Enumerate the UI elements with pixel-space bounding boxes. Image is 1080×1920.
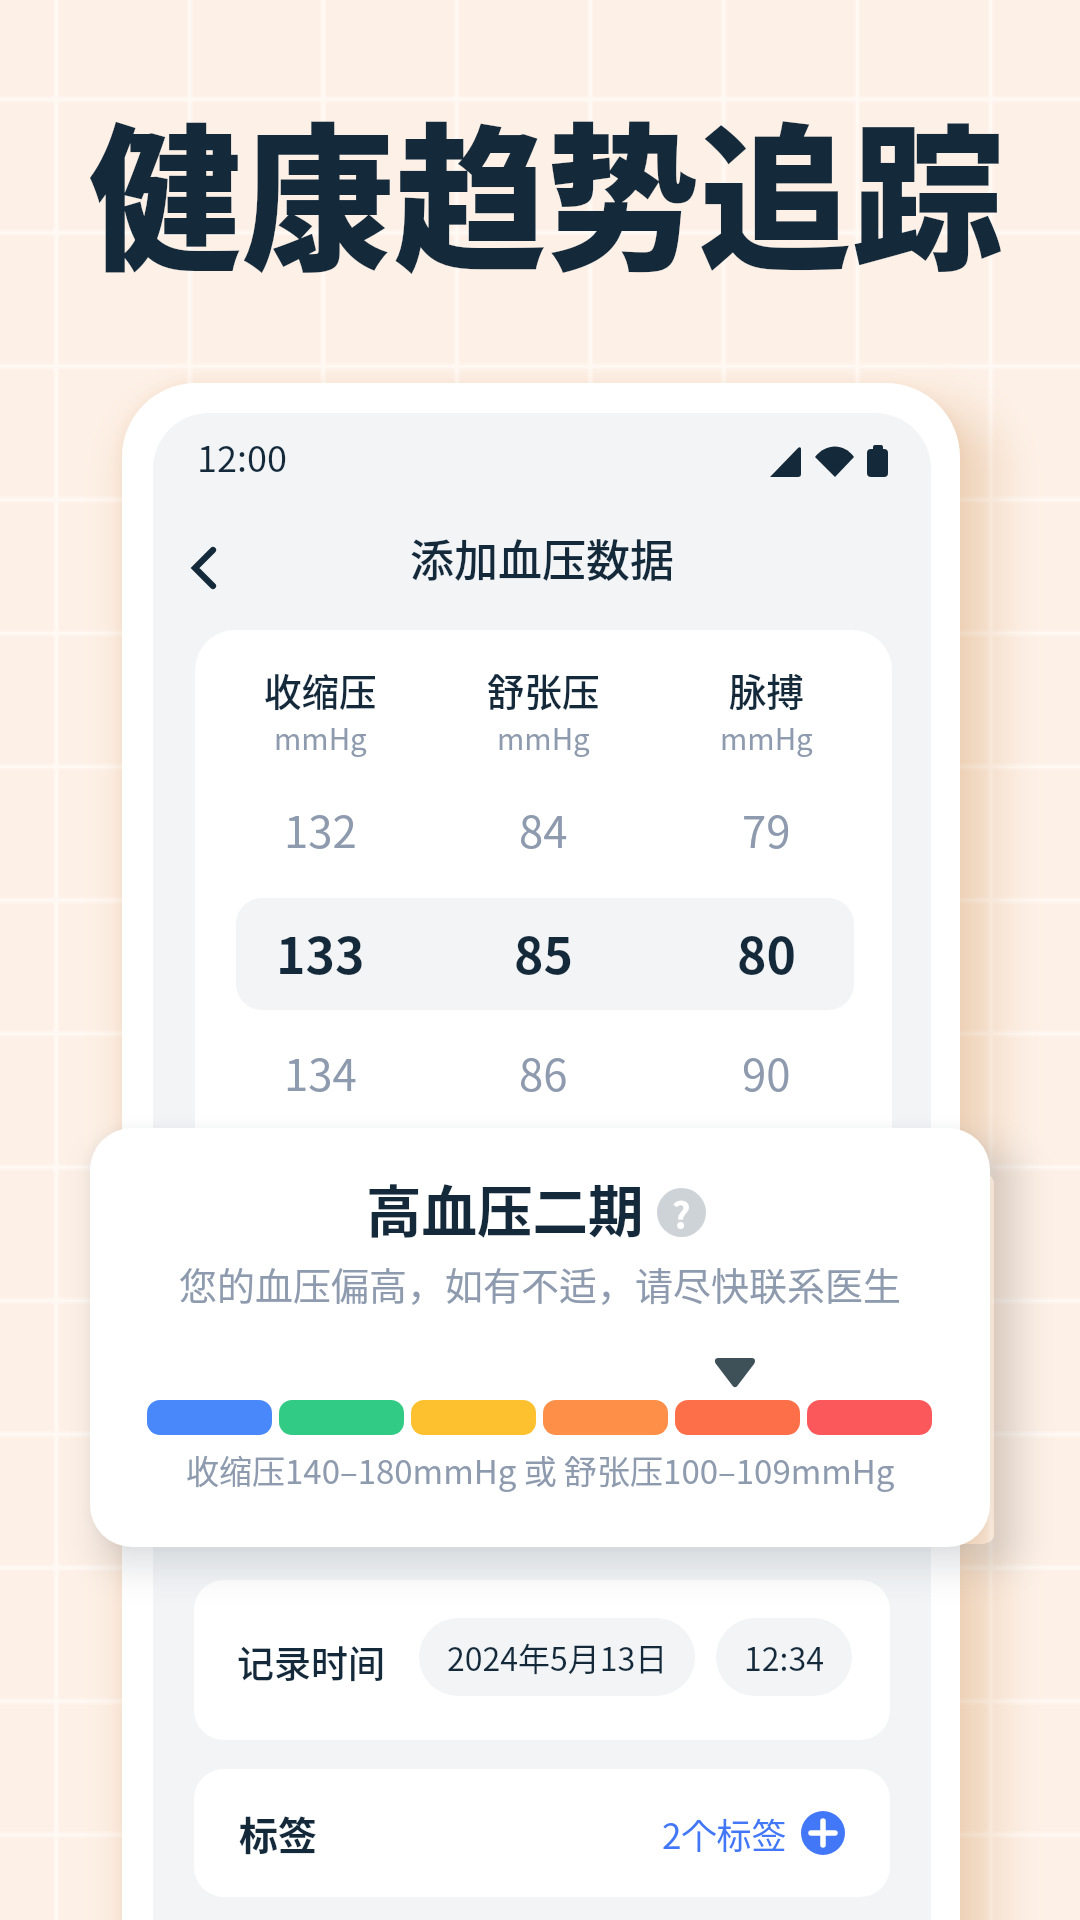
button[interactable]: Blood pressure level 4 bbox=[543, 1400, 668, 1435]
button[interactable]: Blood pressure level 2 bbox=[279, 1400, 404, 1435]
staticText: ? bbox=[672, 1188, 691, 1236]
staticText: 舒张压 bbox=[487, 662, 600, 716]
button[interactable]: 90 bbox=[646, 1026, 886, 1116]
staticText: mmHg bbox=[274, 716, 367, 759]
staticText: 脉搏 bbox=[729, 662, 804, 716]
staticText: 85 bbox=[514, 916, 573, 988]
staticText: mmHg bbox=[720, 716, 813, 759]
staticText: 12:34 bbox=[744, 1634, 824, 1680]
staticText: 86 bbox=[519, 1040, 568, 1103]
staticText: 134 bbox=[284, 1040, 357, 1103]
staticText: 您的血压偏高，如有不适，请尽快联系医生 bbox=[179, 1256, 902, 1311]
staticText: 收缩压140–180mmHg 或 舒张压100–109mmHg bbox=[186, 1446, 895, 1494]
button[interactable]: Blood pressure level 5 bbox=[675, 1400, 800, 1435]
button[interactable]: 2024年5月13日 bbox=[419, 1618, 695, 1696]
button[interactable]: 132 bbox=[200, 783, 440, 873]
staticText: 2个标签 bbox=[662, 1808, 787, 1859]
staticText: 添加血压数据 bbox=[410, 526, 674, 590]
staticText: 79 bbox=[742, 797, 791, 860]
button[interactable]: 标签 bbox=[194, 1769, 890, 1897]
button[interactable]: Blood pressure level 3 bbox=[411, 1400, 536, 1435]
staticText: 90 bbox=[742, 1040, 791, 1103]
button[interactable]: Help bbox=[657, 1188, 706, 1237]
staticText: 84 bbox=[519, 797, 568, 860]
staticText: 健康趋势追踪 bbox=[89, 74, 1004, 303]
button[interactable]: 80 bbox=[646, 907, 886, 997]
button[interactable]: Add tag bbox=[801, 1811, 845, 1855]
staticText: 132 bbox=[284, 797, 357, 860]
button[interactable]: Blood pressure level 1 bbox=[147, 1400, 272, 1435]
button[interactable]: Back bbox=[166, 530, 242, 606]
staticText: 12:00 bbox=[197, 430, 287, 482]
staticText: 高血压二期 bbox=[366, 1168, 644, 1248]
button[interactable]: 134 bbox=[200, 1026, 440, 1116]
staticText: 收缩压 bbox=[264, 662, 377, 716]
button[interactable]: 79 bbox=[646, 783, 886, 873]
staticText: mmHg bbox=[497, 716, 590, 759]
button[interactable]: 133 bbox=[200, 907, 440, 997]
staticText: 标签 bbox=[239, 1805, 318, 1861]
staticText: 2024年5月13日 bbox=[447, 1634, 668, 1680]
staticText: 133 bbox=[276, 916, 365, 988]
button[interactable]: 记录时间 bbox=[194, 1580, 890, 1740]
button[interactable]: 12:34 bbox=[716, 1618, 852, 1696]
button[interactable]: 86 bbox=[423, 1026, 663, 1116]
staticText: 记录时间 bbox=[237, 1635, 385, 1689]
button[interactable]: 84 bbox=[423, 783, 663, 873]
button[interactable]: 85 bbox=[423, 907, 663, 997]
staticText: 80 bbox=[737, 916, 796, 988]
button[interactable]: Blood pressure level 6 bbox=[807, 1400, 932, 1435]
